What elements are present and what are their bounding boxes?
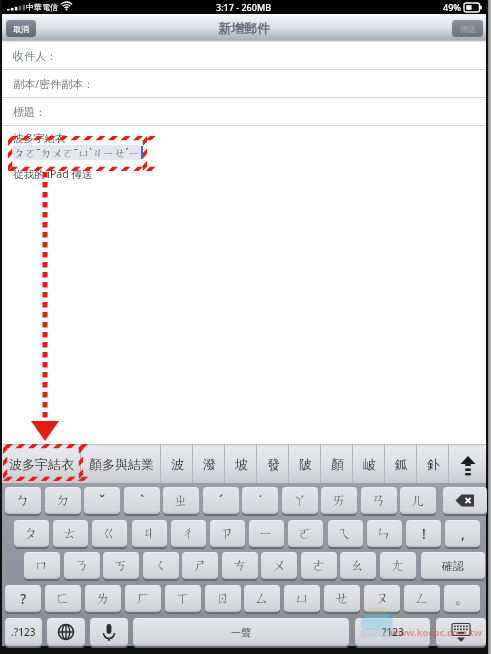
staticText: 潑 — [203, 456, 216, 472]
button[interactable]: ˇ — [84, 487, 120, 514]
button[interactable]: ㄐ — [132, 520, 167, 547]
button[interactable]: Hide keyboard — [436, 618, 486, 646]
button[interactable]: ㄚ — [282, 487, 318, 514]
button[interactable]: ㄓ — [163, 487, 199, 514]
staticText: 3:17 - 260MB — [216, 1, 272, 13]
staticText: ㄕ — [193, 557, 208, 575]
button[interactable]: ㄌ — [85, 585, 121, 612]
staticText: 從我的 iPad 傳送 — [13, 167, 93, 181]
button[interactable]: ? — [5, 585, 41, 612]
button[interactable]: 標題： — [2, 98, 486, 125]
button[interactable]: ㄢ — [361, 487, 397, 514]
button[interactable]: ㄟ — [328, 520, 363, 547]
button[interactable]: Dictation — [90, 618, 128, 646]
button[interactable]: Change keyboard — [47, 618, 85, 646]
button[interactable]: ˙ — [242, 487, 278, 514]
staticText: ㄊ — [63, 525, 78, 543]
staticText: ㄘ — [233, 557, 248, 575]
button[interactable]: ㄉ — [45, 487, 81, 514]
button[interactable]: 發 — [257, 444, 289, 483]
staticText: 一聲 — [231, 626, 251, 639]
button[interactable]: ㄎ — [103, 552, 139, 579]
button[interactable]: 傳送 — [452, 20, 483, 37]
staticText: ㄗ — [220, 525, 235, 543]
staticText: ㄔ — [181, 525, 196, 543]
button[interactable]: 潑 — [193, 444, 225, 483]
staticText: ㄟ — [338, 525, 353, 543]
button[interactable]: ㄅ — [5, 487, 41, 514]
button[interactable]: 顏多與結業 — [81, 444, 161, 483]
button[interactable]: 一聲 — [133, 618, 349, 646]
staticText: 收件人： — [13, 49, 57, 63]
staticText: ㄇ — [35, 557, 50, 575]
button[interactable]: ㄦ — [400, 487, 436, 514]
button[interactable]: 波多宇結衣 — [2, 444, 81, 483]
button[interactable]: ㄋ — [64, 552, 100, 579]
button[interactable]: ㄣ — [367, 520, 402, 547]
button[interactable]: 陂 — [289, 444, 321, 483]
staticText: ㄑ — [154, 557, 169, 575]
button[interactable]: ㄜ — [301, 552, 337, 579]
staticText: ㄛ — [298, 525, 313, 543]
staticText: 坡 — [235, 456, 248, 472]
button[interactable]: ㄕ — [182, 552, 218, 579]
button[interactable]: ㄘ — [222, 552, 258, 579]
staticText: ˙ — [259, 491, 262, 510]
staticText: ㄈ — [56, 590, 71, 608]
button[interactable]: ㄞ — [321, 487, 357, 514]
button[interactable]: ˋ — [124, 487, 160, 514]
button[interactable]: , — [445, 520, 480, 547]
button[interactable]: 確認 — [421, 552, 485, 579]
button[interactable]: ㄑ — [143, 552, 179, 579]
staticText: ㄝ — [335, 590, 350, 608]
staticText: 波多宇結衣 — [13, 132, 66, 145]
button[interactable]: 波 — [161, 444, 193, 483]
button[interactable]: ㄇ — [24, 552, 60, 579]
staticText: 49% — [443, 1, 461, 13]
staticText: 傳送 — [460, 24, 476, 34]
button[interactable]: ㄔ — [171, 520, 206, 547]
button[interactable]: ㄠ — [340, 552, 376, 579]
button[interactable]: ㄤ — [380, 552, 416, 579]
staticText: , — [461, 524, 465, 543]
button[interactable]: .?123 — [5, 618, 42, 646]
button[interactable]: ㄈ — [45, 585, 81, 612]
button[interactable]: Backspace — [443, 487, 487, 514]
button[interactable]: ㄏ — [125, 585, 161, 612]
staticText: ! — [422, 524, 426, 543]
button[interactable]: ㄗ — [210, 520, 245, 547]
button[interactable]: 坡 — [225, 444, 257, 483]
staticText: ㄙ — [255, 590, 270, 608]
button[interactable]: ㄖ — [205, 585, 241, 612]
button[interactable]: 釙 — [417, 444, 449, 483]
staticText: ㄅ — [16, 492, 31, 510]
button[interactable]: ㄊ — [53, 520, 88, 547]
button[interactable]: ㄧ — [249, 520, 284, 547]
button[interactable]: ˊ — [203, 487, 239, 514]
staticText: ? — [20, 589, 27, 608]
staticText: ˊ — [219, 491, 224, 510]
button[interactable]: ㄆ — [14, 520, 49, 547]
button[interactable]: ㄝ — [324, 585, 360, 612]
staticText: 取消 — [13, 24, 29, 34]
button[interactable]: 顏 — [321, 444, 353, 483]
staticText: ㄥ — [415, 590, 430, 608]
button[interactable]: 岥 — [353, 444, 385, 483]
button[interactable]: 副本/密件副本： — [2, 70, 486, 97]
button[interactable]: ㄨ — [261, 552, 297, 579]
button[interactable]: ㄙ — [244, 585, 280, 612]
button[interactable]: Show more candidates — [449, 444, 486, 483]
button[interactable]: ㄥ — [404, 585, 440, 612]
button[interactable]: 收件人： — [2, 42, 486, 69]
button[interactable]: 。 — [444, 585, 480, 612]
button[interactable]: 鈲 — [385, 444, 417, 483]
staticText: ㄒ — [176, 590, 191, 608]
button[interactable]: ! — [406, 520, 441, 547]
button[interactable]: ㄩ — [284, 585, 320, 612]
button[interactable]: ?123 — [355, 618, 430, 646]
button[interactable]: 取消 — [6, 20, 36, 37]
button[interactable]: ㄡ — [364, 585, 400, 612]
button[interactable]: ㄒ — [165, 585, 201, 612]
button[interactable]: ㄛ — [288, 520, 323, 547]
button[interactable]: ㄍ — [92, 520, 127, 547]
